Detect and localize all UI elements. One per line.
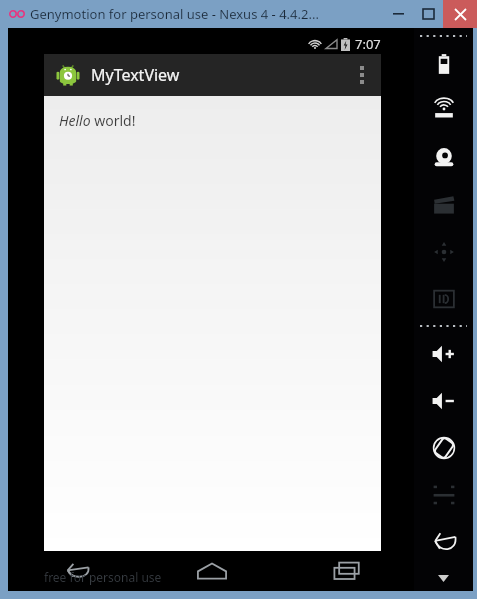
button[interactable]: Back: [414, 518, 473, 565]
button[interactable]: Back: [8, 551, 144, 591]
staticText: Genymotion for personal use - Nexus 4 - …: [30, 5, 319, 23]
button[interactable]: Recent apps: [279, 551, 414, 591]
button[interactable]: Volume up: [414, 330, 473, 377]
staticText: Hello world!: [59, 111, 136, 130]
button[interactable]: Home: [144, 551, 279, 591]
button[interactable]: Screen recorder: [414, 181, 473, 228]
button[interactable]: GPS: [414, 87, 473, 134]
staticText: 7:07: [355, 35, 381, 53]
button[interactable]: More options: [343, 54, 381, 96]
button[interactable]: Volume down: [414, 377, 473, 424]
button[interactable]: Maximize: [413, 0, 443, 28]
button[interactable]: Camera: [414, 134, 473, 181]
button[interactable]: Rotate: [414, 424, 473, 471]
button[interactable]: More: [414, 565, 473, 591]
button[interactable]: Identifiers: [414, 275, 473, 322]
staticText: MyTextView: [91, 64, 180, 86]
staticText: free for personal use: [44, 569, 162, 585]
button[interactable]: Scale 1:1: [414, 471, 473, 518]
button[interactable]: Battery: [414, 40, 473, 87]
button[interactable]: Accelerometer: [414, 228, 473, 275]
button[interactable]: Close: [443, 0, 477, 28]
button[interactable]: Minimize: [383, 0, 413, 28]
